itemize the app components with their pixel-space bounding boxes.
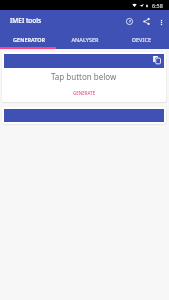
staticText: ANALYSER xyxy=(71,36,99,43)
staticText: GENERATE xyxy=(73,90,96,96)
staticText: DEVICE xyxy=(132,36,151,43)
button[interactable]: Copy xyxy=(151,54,162,65)
staticText: GENERATOR xyxy=(13,36,45,43)
staticText: Tap button below xyxy=(51,71,117,82)
button[interactable]: Share xyxy=(139,14,154,29)
button[interactable]: GENERATOR xyxy=(0,31,57,47)
button[interactable]: ANALYSER xyxy=(57,31,113,47)
button[interactable]: DEVICE xyxy=(113,31,169,47)
staticText: 6:58 xyxy=(152,2,163,9)
staticText: IMEI tools xyxy=(10,16,42,25)
staticText: ? xyxy=(129,19,131,24)
button[interactable]: Help xyxy=(120,12,139,31)
button[interactable]: More options xyxy=(154,15,168,29)
button[interactable]: GENERATE xyxy=(68,87,101,99)
